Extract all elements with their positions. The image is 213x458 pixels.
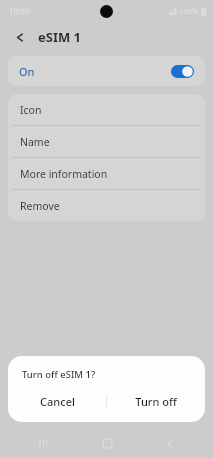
button[interactable]: Turn off [107,389,205,413]
staticText: Icon [20,103,42,117]
button[interactable]: More information [8,158,205,189]
staticText: 10:00 [9,6,30,17]
staticText: 100% [179,6,199,16]
button[interactable]: Name [8,126,205,157]
staticText: On [19,64,35,79]
staticText: Turn off [135,394,177,409]
staticText: Turn off eSIM 1? [22,368,96,381]
staticText: Name [20,135,50,149]
button[interactable]: Remove [8,190,205,221]
button[interactable]: On [8,56,205,86]
staticText: Remove [20,199,60,213]
staticText: Cancel [40,394,75,409]
staticText: More information [20,167,108,181]
button[interactable]: Cancel [8,389,106,413]
staticText: eSIM 1 [38,28,82,46]
button[interactable]: Navigate up [10,27,30,47]
button[interactable]: Icon [8,94,205,125]
